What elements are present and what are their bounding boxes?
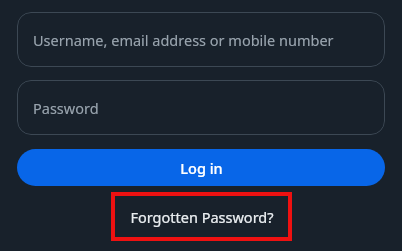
staticText: Forgotten Password? xyxy=(130,207,274,227)
staticText: Username, email address or mobile number xyxy=(33,30,334,50)
staticText: Password xyxy=(33,98,99,118)
button[interactable]: Log in xyxy=(17,149,385,186)
button[interactable]: Password xyxy=(17,80,385,135)
staticText: Log in xyxy=(180,158,223,178)
button[interactable]: Forgotten Password? xyxy=(111,192,292,241)
button[interactable]: Username, email address or mobile number xyxy=(17,12,385,67)
